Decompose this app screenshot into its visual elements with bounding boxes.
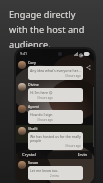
- staticText: Hi I'm here 😊: [30, 90, 53, 95]
- staticText: 3 hours ago: [65, 144, 81, 148]
- staticText: Irvin: [78, 152, 88, 158]
- button[interactable]: Cory: [18, 181, 92, 183]
- staticText: 3 hours ago: [37, 118, 53, 122]
- button[interactable]: Ayomi: [18, 103, 92, 125]
- staticText: Sosan: [28, 160, 39, 165]
- button[interactable]: Sosan: [18, 159, 92, 181]
- staticText: How do I sign: [30, 112, 53, 117]
- staticText: Engage directly: [9, 8, 76, 21]
- button[interactable]: Share: [85, 64, 92, 71]
- staticText: 3 hours ago: [65, 74, 81, 78]
- staticText: Shafii: [28, 126, 38, 131]
- staticText: Ayomi: [28, 104, 39, 109]
- staticText: Any idea what's everyone here?: [30, 68, 81, 73]
- staticText: 9:41: [20, 51, 28, 56]
- staticText: Crystal: [22, 152, 36, 158]
- button[interactable]: Divine: [18, 81, 92, 103]
- staticText: Cory: [28, 60, 36, 65]
- button[interactable]: Shafii: [18, 125, 92, 151]
- staticText: 3 hours ago: [37, 96, 53, 100]
- staticText: Divine: [28, 82, 39, 87]
- button[interactable]: Cory: [18, 59, 92, 81]
- staticText: We has hosted us for the really people h…: [30, 134, 81, 143]
- staticText: with the host and: [9, 23, 85, 36]
- staticText: audience.: [9, 38, 51, 51]
- staticText: 2 mins: [50, 174, 59, 178]
- staticText: Let me know too.: [30, 168, 59, 173]
